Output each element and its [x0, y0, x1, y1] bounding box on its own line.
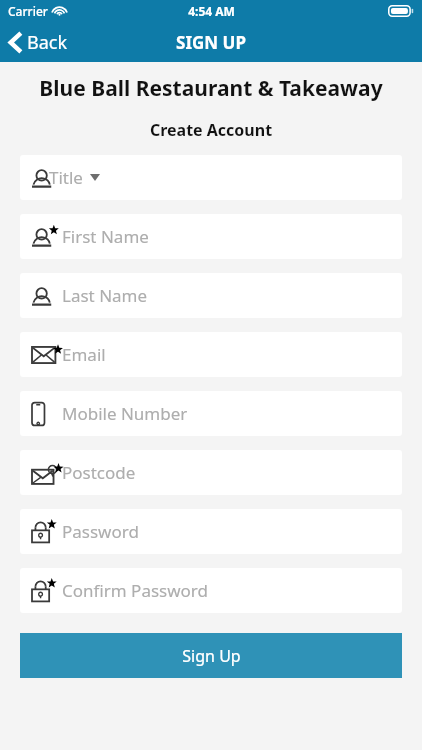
staticText: Mobile Number	[62, 402, 188, 425]
staticText: First Name	[62, 225, 149, 248]
button[interactable]: Mobile Number	[20, 391, 402, 436]
staticText: Blue Ball Restaurant & Takeaway	[0, 74, 422, 103]
button[interactable]: Postcode	[20, 450, 402, 495]
staticText: SIGN UP	[176, 31, 246, 54]
button[interactable]: Last Name	[20, 273, 402, 318]
staticText: Confirm Password	[62, 579, 208, 602]
staticText: Postcode	[62, 461, 136, 484]
staticText: 4:54 AM	[188, 3, 235, 19]
staticText: Sign Up	[182, 645, 241, 667]
button[interactable]: Email	[20, 332, 402, 377]
button[interactable]: First Name	[20, 214, 402, 259]
button[interactable]: Password	[20, 509, 402, 554]
staticText: Title	[49, 166, 83, 189]
staticText: Password	[62, 520, 139, 543]
button[interactable]: Title	[20, 155, 402, 200]
button[interactable]: Confirm Password	[20, 568, 402, 613]
staticText: Last Name	[62, 284, 148, 307]
staticText: Email	[62, 343, 106, 366]
button[interactable]: Back	[0, 22, 78, 62]
staticText: Carrier	[8, 3, 48, 19]
staticText: Create Account	[0, 119, 422, 141]
button[interactable]: Sign Up	[20, 633, 402, 678]
staticText: Back	[27, 30, 68, 55]
